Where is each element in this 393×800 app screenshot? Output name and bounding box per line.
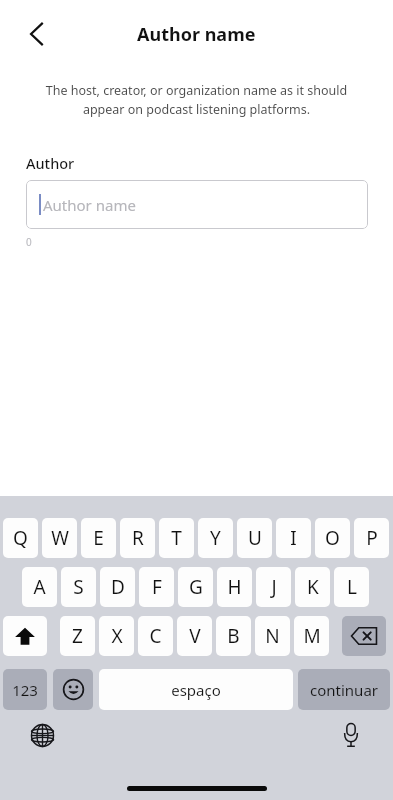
- staticText: Z: [72, 623, 83, 649]
- staticText: E: [93, 525, 104, 551]
- button[interactable]: E: [81, 518, 116, 558]
- staticText: Author name: [137, 22, 256, 47]
- staticText: W: [51, 525, 69, 551]
- button[interactable]: D: [100, 567, 135, 607]
- button[interactable]: F: [139, 567, 174, 607]
- button[interactable]: P: [354, 518, 389, 558]
- button[interactable]: Z: [60, 616, 95, 656]
- button[interactable]: Back: [16, 14, 56, 54]
- button[interactable]: Emoji: [53, 669, 93, 710]
- button[interactable]: Q: [3, 518, 38, 558]
- staticText: K: [307, 574, 319, 600]
- staticText: C: [149, 623, 162, 649]
- staticText: R: [132, 525, 144, 551]
- button[interactable]: K: [295, 567, 330, 607]
- button[interactable]: M: [294, 616, 329, 656]
- button[interactable]: B: [216, 616, 251, 656]
- button[interactable]: L: [334, 567, 369, 607]
- staticText: I: [290, 525, 297, 551]
- button[interactable]: H: [217, 567, 252, 607]
- staticText: 0: [26, 235, 32, 249]
- button[interactable]: R: [120, 518, 155, 558]
- button[interactable]: continuar: [298, 669, 390, 710]
- staticText: 123: [12, 680, 38, 700]
- staticText: continuar: [310, 680, 378, 700]
- button[interactable]: G: [178, 567, 213, 607]
- staticText: N: [265, 623, 280, 649]
- button[interactable]: Y: [198, 518, 233, 558]
- button[interactable]: J: [256, 567, 291, 607]
- button[interactable]: A: [22, 567, 57, 607]
- button[interactable]: N: [255, 616, 290, 656]
- staticText: Y: [210, 525, 221, 551]
- button[interactable]: S: [61, 567, 96, 607]
- button[interactable]: Change keyboard language: [22, 715, 62, 755]
- staticText: X: [111, 623, 123, 649]
- staticText: F: [152, 574, 162, 600]
- staticText: T: [171, 525, 182, 551]
- staticText: O: [325, 525, 340, 551]
- staticText: G: [189, 574, 203, 600]
- staticText: The host, creator, or organization name …: [34, 82, 359, 118]
- button[interactable]: O: [315, 518, 350, 558]
- staticText: P: [366, 525, 378, 551]
- button[interactable]: Voice input: [331, 715, 371, 755]
- staticText: V: [189, 623, 201, 649]
- button[interactable]: V: [177, 616, 212, 656]
- staticText: espaço: [171, 680, 221, 700]
- staticText: D: [111, 574, 125, 600]
- staticText: M: [303, 623, 321, 649]
- button[interactable]: C: [138, 616, 173, 656]
- button[interactable]: I: [276, 518, 311, 558]
- staticText: J: [271, 574, 277, 600]
- staticText: B: [227, 623, 240, 649]
- staticText: S: [73, 574, 84, 600]
- button[interactable]: Backspace: [342, 616, 386, 656]
- staticText: U: [248, 525, 262, 551]
- staticText: L: [347, 574, 357, 600]
- button[interactable]: W: [42, 518, 77, 558]
- staticText: Q: [13, 525, 28, 551]
- button[interactable]: U: [237, 518, 272, 558]
- button[interactable]: Shift: [3, 616, 47, 656]
- button[interactable]: espaço: [99, 669, 293, 710]
- staticText: H: [227, 574, 242, 600]
- button[interactable]: Author name: [26, 180, 368, 229]
- staticText: Author: [26, 153, 75, 173]
- button[interactable]: T: [159, 518, 194, 558]
- button[interactable]: 123: [3, 669, 47, 710]
- button[interactable]: X: [99, 616, 134, 656]
- staticText: A: [33, 574, 46, 600]
- staticText: Author name: [43, 195, 136, 215]
